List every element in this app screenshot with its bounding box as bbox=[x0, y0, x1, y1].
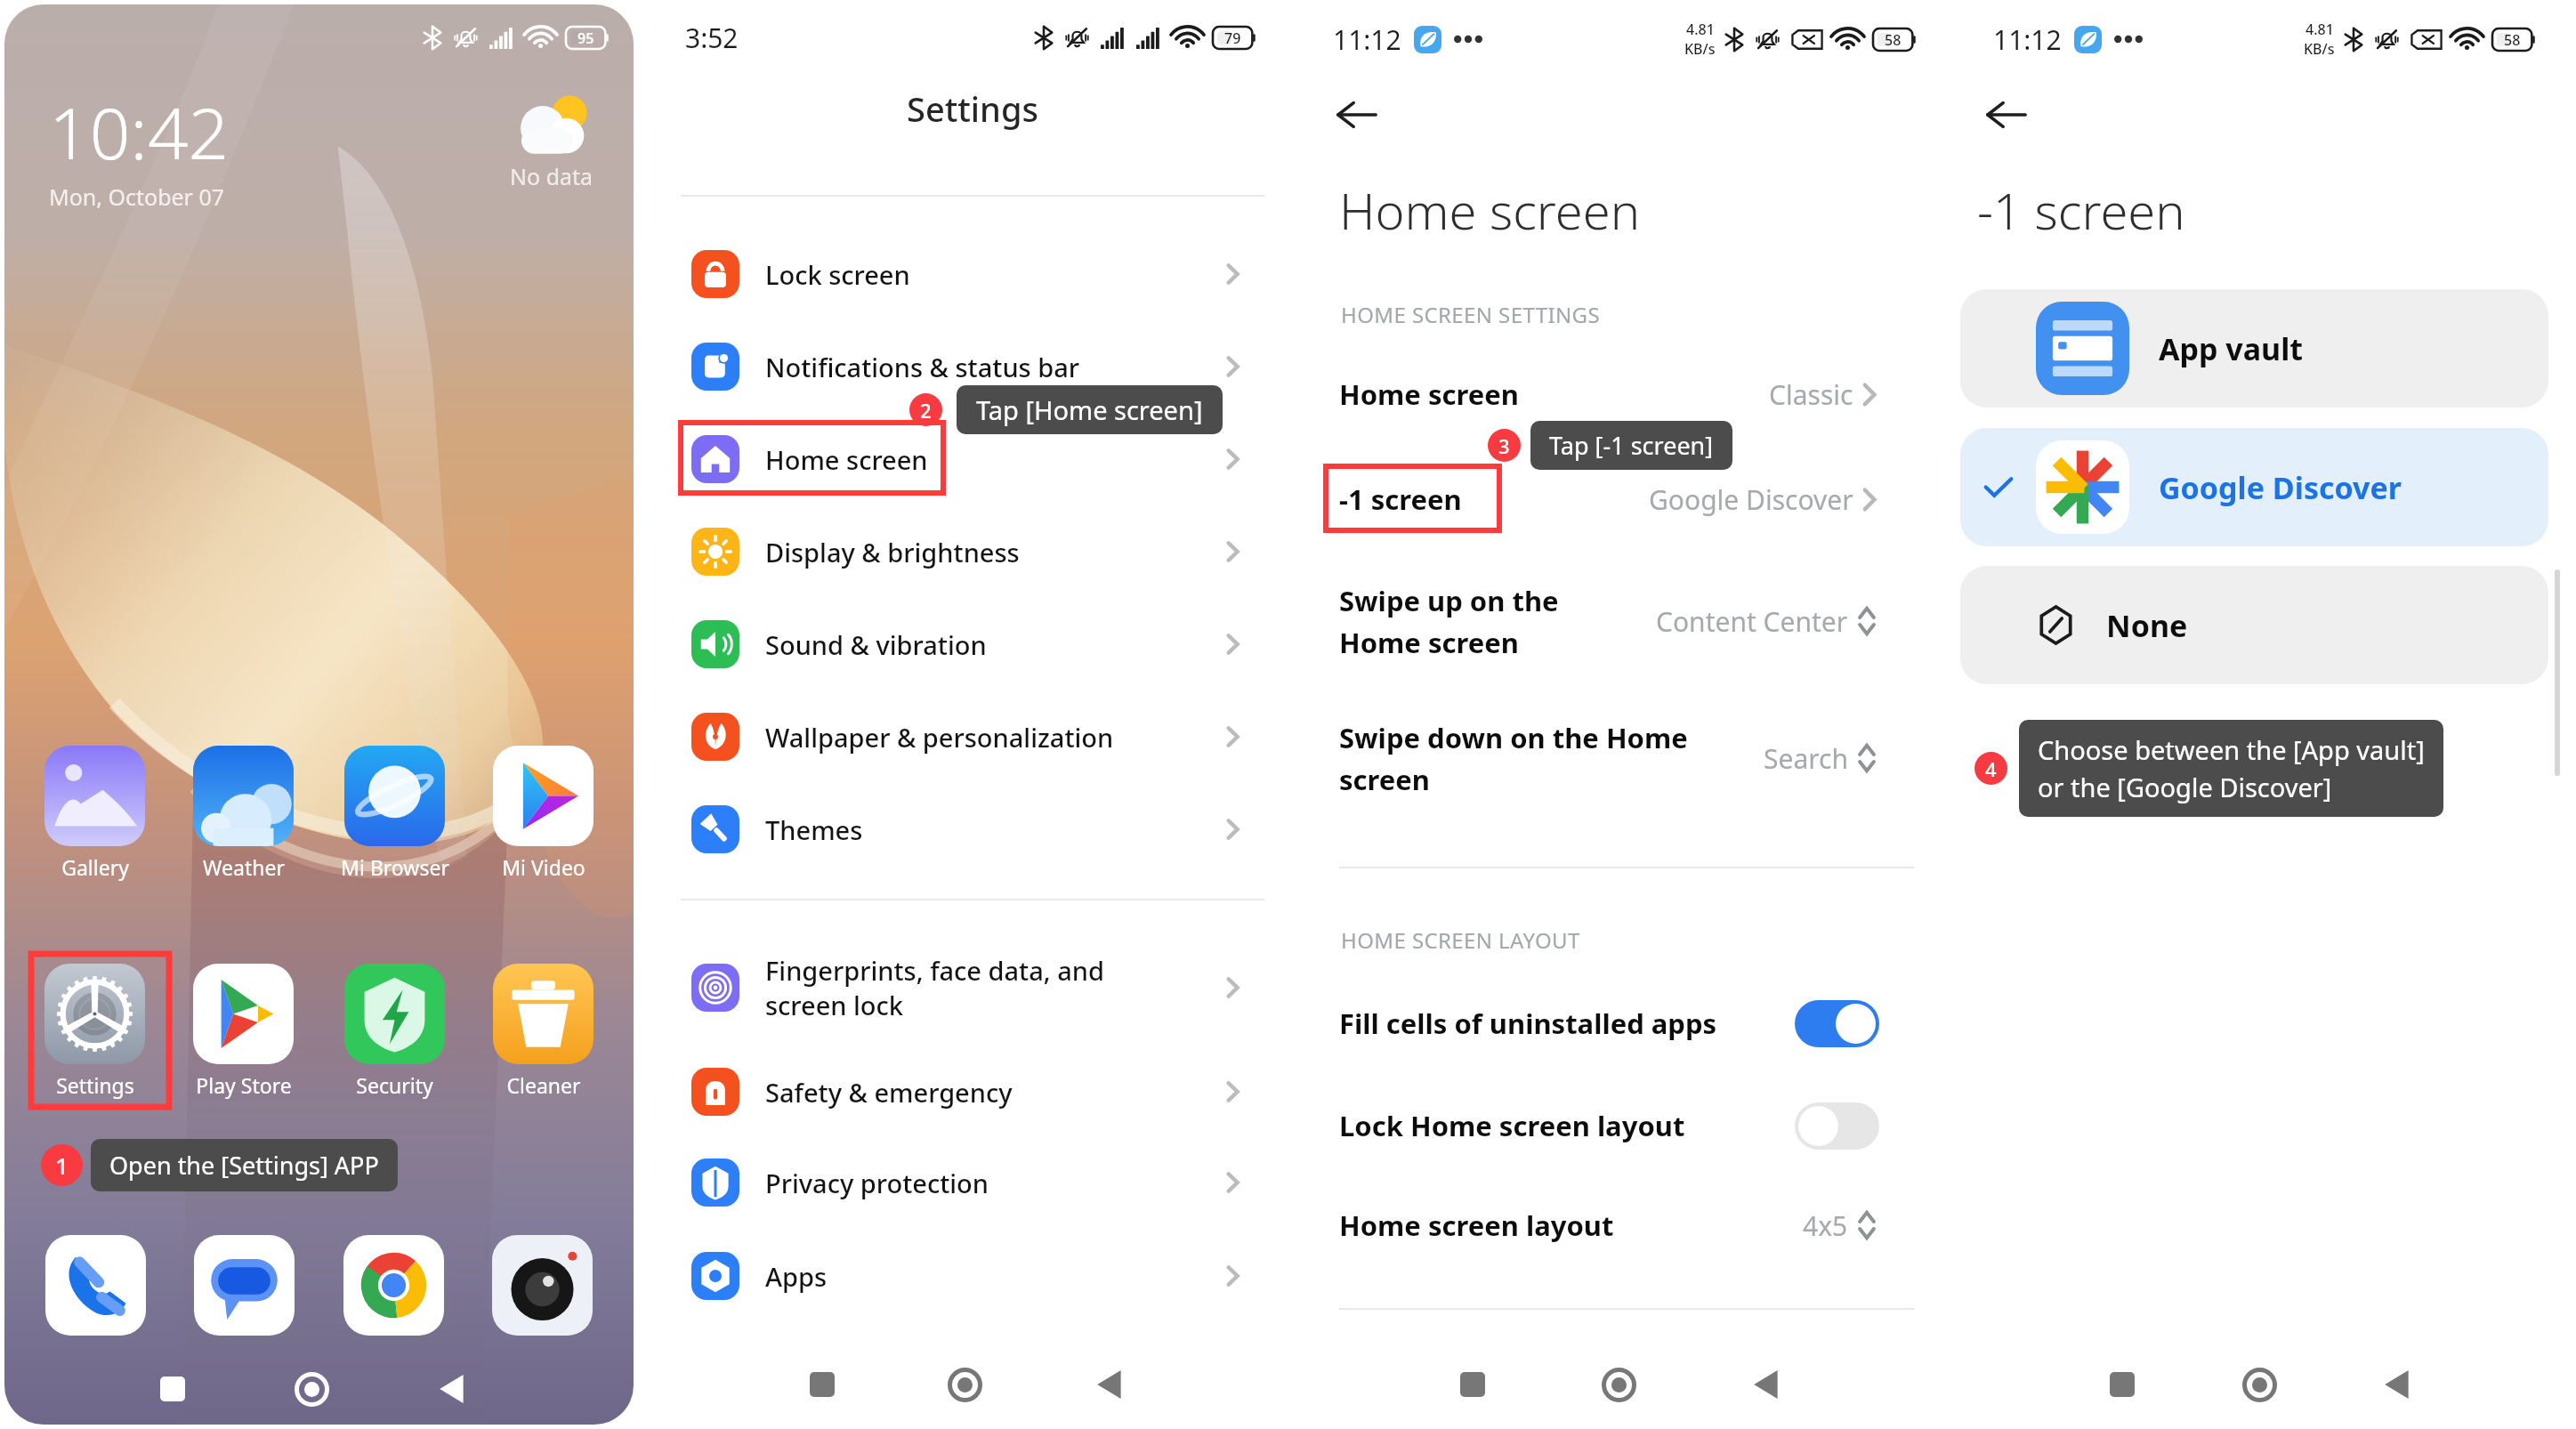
staticText: Home screen layout bbox=[1339, 1207, 1803, 1244]
button[interactable]: Home bbox=[279, 1357, 343, 1421]
button[interactable]: Weather bbox=[177, 746, 310, 881]
button[interactable]: Home bbox=[1587, 1352, 1651, 1417]
staticText: Apps bbox=[765, 1259, 1226, 1294]
button[interactable]: Swipe up on the Home screen bbox=[1296, 572, 1957, 670]
button[interactable]: Lock Home screen layout bbox=[1296, 1081, 1957, 1170]
staticText: Home screen bbox=[1339, 176, 1640, 244]
button[interactable]: Security bbox=[328, 964, 461, 1099]
button[interactable]: Sound & vibration bbox=[649, 598, 1296, 690]
button[interactable]: Notifications & status bar bbox=[649, 320, 1296, 413]
button[interactable]: Back bbox=[1336, 93, 1378, 136]
staticText: Cleaner bbox=[506, 1071, 581, 1099]
button[interactable]: Back bbox=[420, 1357, 484, 1421]
button[interactable]: Swipe down on the Home screen bbox=[1296, 709, 1957, 807]
button[interactable]: Settings bbox=[28, 964, 161, 1099]
button[interactable]: Play Store bbox=[177, 964, 310, 1099]
staticText: Swipe down on the Home screen bbox=[1339, 719, 1764, 798]
button[interactable]: Chrome bbox=[343, 1235, 444, 1336]
staticText: Mon, October 07 bbox=[49, 182, 225, 212]
staticText: Settings bbox=[649, 85, 1296, 132]
button[interactable]: Lock screen bbox=[649, 228, 1296, 320]
staticText: -1 screen bbox=[1339, 480, 1649, 518]
button[interactable]: Google Discover bbox=[1960, 428, 2548, 546]
button[interactable]: App vault bbox=[1960, 289, 2548, 408]
staticText: -1 screen bbox=[1977, 176, 2185, 244]
staticText: Tap [-1 screen] bbox=[1549, 429, 1714, 462]
button[interactable]: Phone bbox=[45, 1235, 146, 1336]
staticText: 4.81 bbox=[2305, 20, 2334, 39]
staticText: Lock Home screen layout bbox=[1339, 1107, 1795, 1144]
staticText: Themes bbox=[765, 812, 1226, 847]
button[interactable]: Fingerprints, face data, and screen lock bbox=[649, 941, 1296, 1034]
staticText: HOME SCREEN SETTINGS bbox=[1341, 300, 1601, 329]
button[interactable]: -1 screen bbox=[1296, 450, 1957, 548]
button[interactable]: Home bbox=[933, 1352, 997, 1417]
staticText: None bbox=[2106, 605, 2188, 646]
button[interactable]: Messages bbox=[194, 1235, 295, 1336]
staticText: 1 bbox=[55, 1150, 69, 1181]
staticText: 3 bbox=[1498, 432, 1510, 459]
staticText: Security bbox=[356, 1071, 433, 1099]
staticText: Fill cells of uninstalled apps bbox=[1339, 1005, 1795, 1042]
staticText: Swipe up on the Home screen bbox=[1339, 582, 1656, 661]
staticText: Open the [Settings] APP bbox=[109, 1149, 379, 1182]
staticText: Lock screen bbox=[765, 257, 1226, 292]
button[interactable]: Apps bbox=[649, 1230, 1296, 1322]
staticText: Google Discover bbox=[1649, 481, 1853, 518]
button[interactable]: Recents bbox=[141, 1357, 205, 1421]
button[interactable]: Back bbox=[1985, 93, 2028, 136]
button[interactable]: Display & brightness bbox=[649, 505, 1296, 598]
staticText: Safety & emergency bbox=[765, 1075, 1226, 1110]
button[interactable]: Gallery bbox=[28, 746, 161, 881]
button[interactable]: Safety & emergency bbox=[649, 1046, 1296, 1138]
staticText: Gallery bbox=[61, 853, 129, 881]
staticText: 95 bbox=[577, 28, 594, 48]
staticText: Mi Video bbox=[502, 853, 585, 881]
button[interactable]: Themes bbox=[649, 783, 1296, 876]
staticText: Search bbox=[1764, 740, 1848, 777]
button[interactable]: Home screen bbox=[1296, 345, 1957, 443]
staticText: App vault bbox=[2159, 328, 2304, 369]
staticText: Display & brightness bbox=[765, 535, 1226, 569]
staticText: Mi Browser bbox=[341, 853, 449, 881]
staticText: Weather bbox=[203, 853, 285, 881]
staticText: Content Center bbox=[1656, 603, 1848, 640]
button[interactable]: Home screen layout bbox=[1296, 1176, 1957, 1274]
button[interactable]: Mi Video bbox=[477, 746, 610, 881]
button[interactable]: Recents bbox=[790, 1352, 854, 1417]
button[interactable]: Back bbox=[1734, 1352, 1798, 1417]
staticText: Tap [Home screen] bbox=[976, 392, 1203, 427]
button[interactable]: Camera bbox=[492, 1235, 593, 1336]
staticText: Notifications & status bar bbox=[765, 350, 1226, 384]
staticText: 2 bbox=[920, 397, 932, 424]
button[interactable]: Recents bbox=[1441, 1352, 1505, 1417]
staticText: Choose between the [App vault] or the [G… bbox=[2038, 732, 2425, 804]
staticText: 4x5 bbox=[1803, 1207, 1848, 1244]
staticText: KB/s bbox=[2304, 39, 2335, 59]
staticText: Wallpaper & personalization bbox=[765, 720, 1226, 755]
button[interactable]: None bbox=[1960, 566, 2548, 684]
button[interactable]: Back bbox=[2365, 1352, 2429, 1417]
button[interactable]: Home screen bbox=[649, 413, 1296, 505]
button[interactable]: Back bbox=[1078, 1352, 1142, 1417]
button[interactable]: Fill cells of uninstalled apps bbox=[1296, 979, 1957, 1068]
staticText: Fingerprints, face data, and screen lock bbox=[765, 953, 1226, 1022]
button[interactable]: Wallpaper & personalization bbox=[649, 690, 1296, 783]
staticText: 10:42 bbox=[49, 83, 230, 180]
button[interactable]: Mi Browser bbox=[328, 746, 461, 881]
staticText: 58 bbox=[2504, 30, 2521, 50]
staticText: Sound & vibration bbox=[765, 627, 1226, 662]
staticText: Home screen bbox=[1339, 375, 1769, 413]
staticText: No data bbox=[510, 161, 594, 191]
staticText: 11:12 bbox=[1333, 21, 1401, 58]
button[interactable]: Privacy protection bbox=[649, 1136, 1296, 1229]
staticText: Google Discover bbox=[2159, 467, 2402, 508]
staticText: 79 bbox=[1224, 28, 1241, 48]
staticText: 58 bbox=[1885, 30, 1902, 50]
staticText: Settings bbox=[56, 1071, 134, 1099]
staticText: 3:52 bbox=[685, 20, 739, 56]
button[interactable]: Recents bbox=[2090, 1352, 2154, 1417]
button[interactable]: Cleaner bbox=[477, 964, 610, 1099]
button[interactable]: Home bbox=[2227, 1352, 2291, 1417]
staticText: KB/s bbox=[1684, 39, 1716, 59]
